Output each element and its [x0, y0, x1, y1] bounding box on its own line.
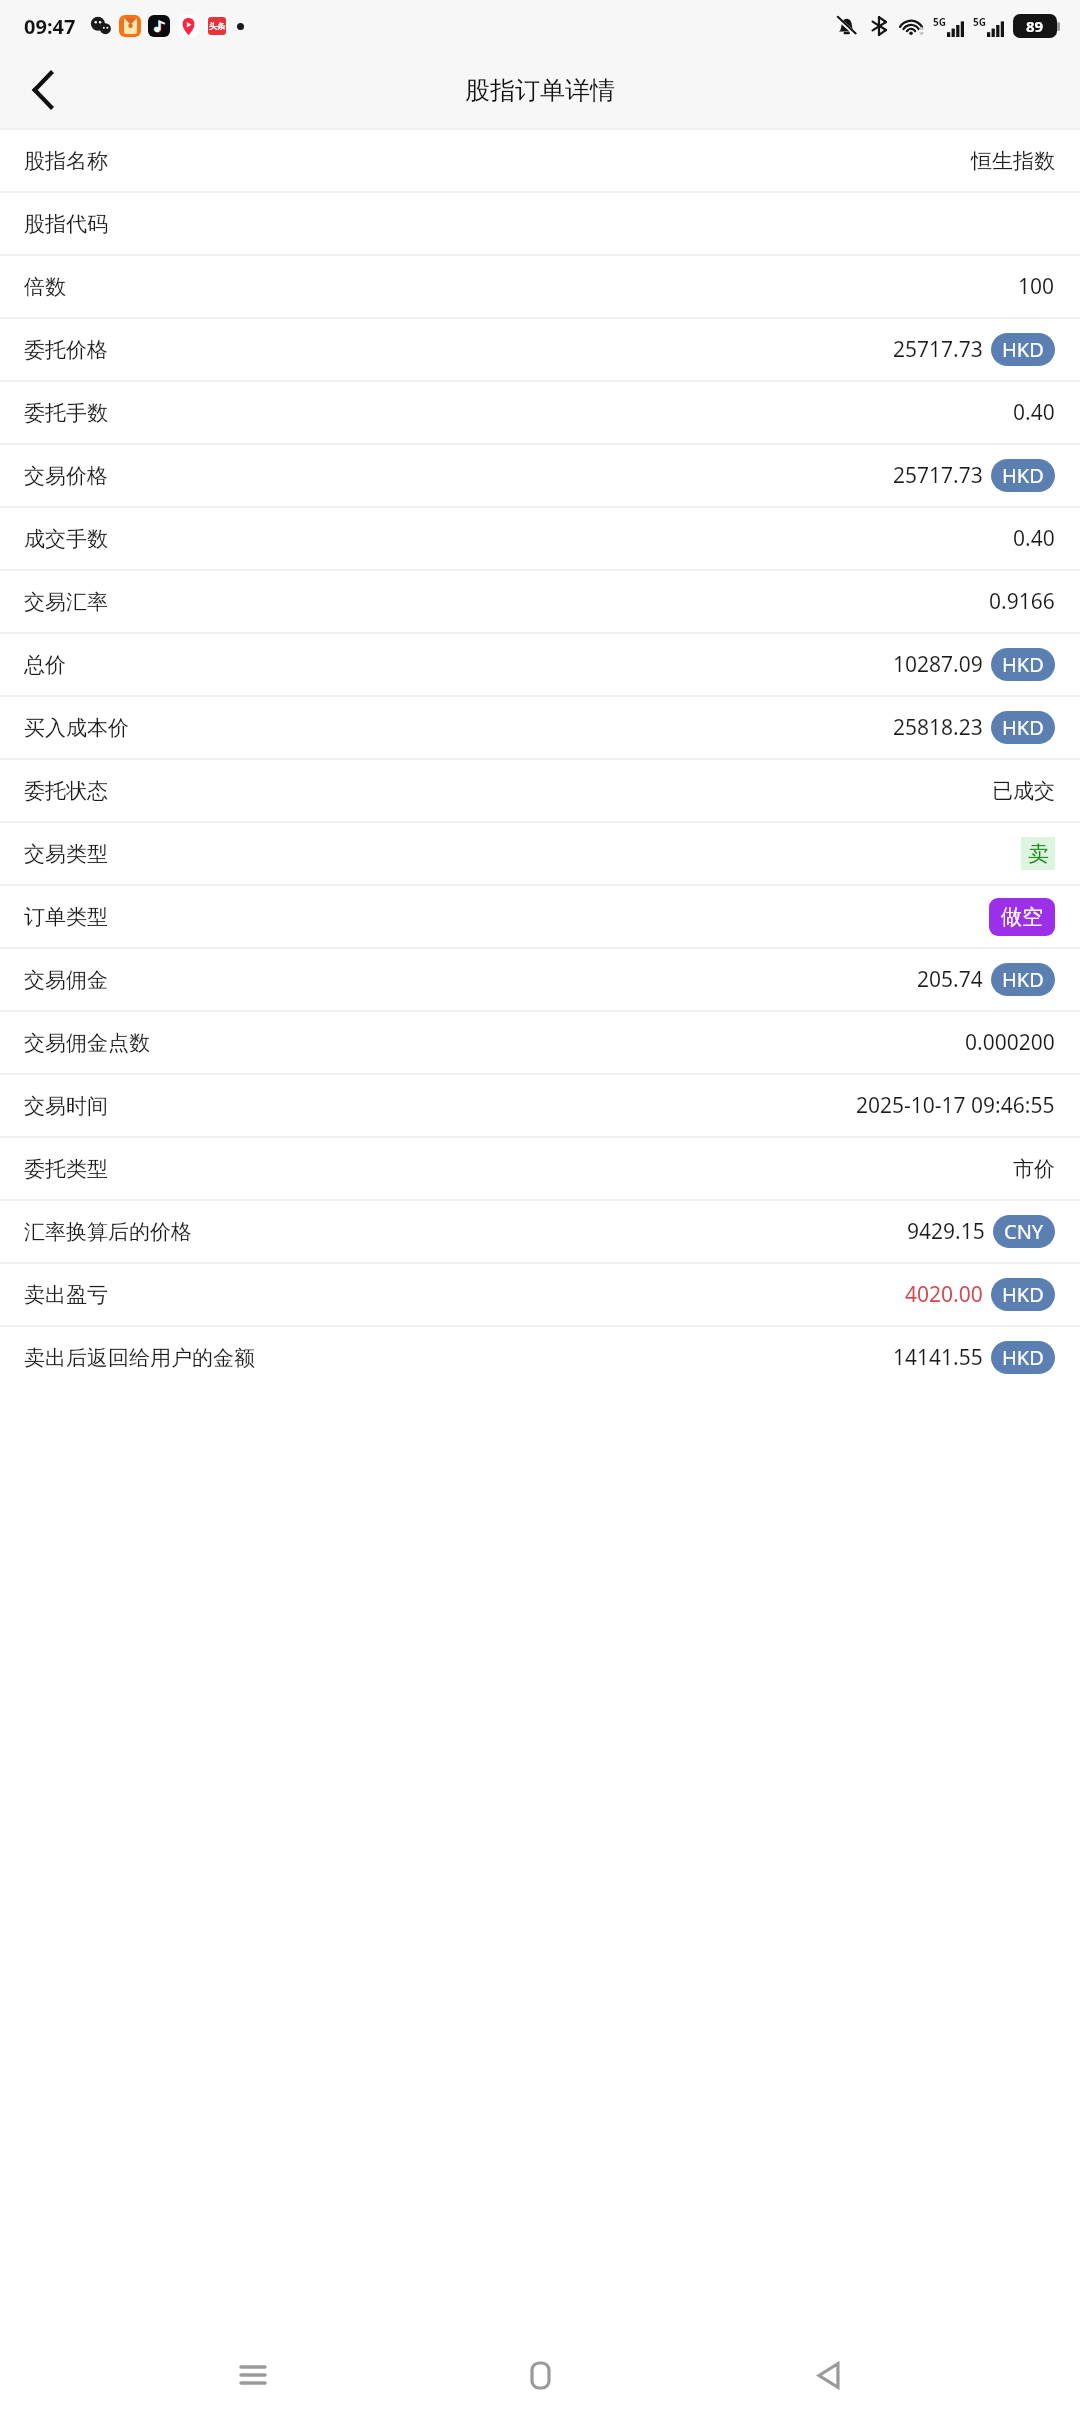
staticText: 14141.55 [893, 1343, 983, 1372]
staticText: 交易汇率 [24, 589, 108, 615]
staticText: 市价 [1013, 1156, 1055, 1182]
staticText: 股指订单详情 [465, 75, 615, 106]
staticText: 交易价格 [24, 463, 108, 489]
staticText: 交易类型 [24, 841, 108, 867]
staticText: 5G [933, 15, 946, 29]
staticText: 25717.73 [893, 461, 983, 490]
staticText: HKD [1002, 336, 1044, 363]
staticText: HKD [1002, 1344, 1044, 1371]
staticText: 10287.09 [893, 650, 983, 679]
button[interactable]: 委托类型 [0, 1138, 1080, 1199]
button[interactable]: Back [793, 2340, 863, 2410]
staticText: HKD [1002, 714, 1044, 741]
button[interactable]: 买入成本价 [0, 697, 1080, 758]
button[interactable]: Home [505, 2340, 575, 2410]
button[interactable]: 委托状态 [0, 760, 1080, 821]
staticText: 汇率换算后的价格 [24, 1219, 192, 1245]
staticText: 委托状态 [24, 778, 108, 804]
button[interactable]: 股指代码 [0, 193, 1080, 254]
staticText: 9429.15 [907, 1217, 985, 1246]
staticText: 卖出后返回给用户的金额 [24, 1345, 255, 1371]
staticText: 委托手数 [24, 400, 108, 426]
button[interactable]: 卖出后返回给用户的金额 [0, 1327, 1080, 1388]
staticText: 25818.23 [893, 713, 983, 742]
button[interactable]: 股指名称 [0, 130, 1080, 191]
staticText: 2025-10-17 09:46:55 [856, 1091, 1055, 1120]
staticText: 100 [1018, 272, 1055, 301]
staticText: 委托价格 [24, 337, 108, 363]
staticText: 订单类型 [24, 904, 108, 930]
button[interactable]: 汇率换算后的价格 [0, 1201, 1080, 1262]
button[interactable]: 订单类型 [0, 886, 1080, 947]
staticText: 头条 [209, 21, 225, 31]
staticText: 倍数 [24, 274, 66, 300]
button[interactable]: 交易汇率 [0, 571, 1080, 632]
staticText: 交易时间 [24, 1093, 108, 1119]
staticText: 0.40 [1013, 398, 1055, 427]
button[interactable]: 交易价格 [0, 445, 1080, 506]
staticText: 卖出盈亏 [24, 1282, 108, 1308]
button[interactable]: 卖出盈亏 [0, 1264, 1080, 1325]
staticText: 0.9166 [989, 587, 1055, 616]
button[interactable]: 委托手数 [0, 382, 1080, 443]
staticText: 成交手数 [24, 526, 108, 552]
staticText: 0.40 [1013, 524, 1055, 553]
staticText: HKD [1002, 1281, 1044, 1308]
staticText: 买入成本价 [24, 715, 129, 741]
staticText: 恒生指数 [971, 148, 1055, 174]
staticText: 205.74 [917, 965, 983, 994]
staticText: 09:47 [24, 13, 76, 40]
staticText: CNY [1004, 1218, 1044, 1245]
button[interactable]: 倍数 [0, 256, 1080, 317]
button[interactable]: 交易时间 [0, 1075, 1080, 1136]
staticText: 总价 [24, 652, 66, 678]
staticText: 25717.73 [893, 335, 983, 364]
button[interactable]: Back [16, 62, 72, 118]
staticText: 交易佣金 [24, 967, 108, 993]
staticText: 股指代码 [24, 211, 108, 237]
button[interactable]: 委托价格 [0, 319, 1080, 380]
staticText: 已成交 [992, 778, 1055, 804]
staticText: HKD [1002, 966, 1044, 993]
staticText: 卖 [1028, 841, 1049, 867]
button[interactable]: 交易佣金 [0, 949, 1080, 1010]
staticText: 股指名称 [24, 148, 108, 174]
button[interactable]: 总价 [0, 634, 1080, 695]
button[interactable]: Recent apps [218, 2340, 288, 2410]
staticText: 4020.00 [905, 1280, 983, 1309]
staticText: 交易佣金点数 [24, 1030, 150, 1056]
staticText: 委托类型 [24, 1156, 108, 1182]
staticText: 0.000200 [965, 1028, 1055, 1057]
staticText: 做空 [1001, 904, 1043, 930]
staticText: 5G [973, 15, 986, 29]
button[interactable]: 交易佣金点数 [0, 1012, 1080, 1073]
staticText: 89 [1026, 16, 1044, 36]
staticText: HKD [1002, 462, 1044, 489]
button[interactable]: 成交手数 [0, 508, 1080, 569]
button[interactable]: 交易类型 [0, 823, 1080, 884]
staticText: HKD [1002, 651, 1044, 678]
